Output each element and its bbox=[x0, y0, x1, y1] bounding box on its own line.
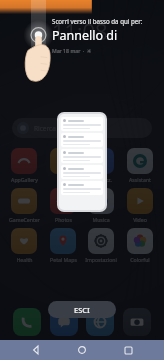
button[interactable]: Indietro bbox=[26, 340, 46, 360]
button[interactable]: GameCenter bbox=[6, 188, 42, 223]
staticText: 11:08 bbox=[52, 16, 108, 46]
button[interactable]: Photos bbox=[45, 188, 81, 223]
button[interactable]: Assistant bbox=[122, 148, 158, 183]
button[interactable]: Health bbox=[6, 228, 42, 263]
button[interactable]: Fotocamera bbox=[123, 308, 151, 336]
staticText: Mar 18 mar · ☀ bbox=[52, 47, 92, 54]
staticText: Colorful bbox=[130, 256, 150, 263]
button[interactable]: Recenti bbox=[118, 340, 138, 360]
button[interactable]: Home bbox=[72, 340, 92, 360]
staticText: Photos bbox=[55, 216, 72, 223]
staticText: Petal Maps bbox=[50, 256, 77, 263]
staticText: AppGallery bbox=[11, 176, 38, 183]
staticText: ESCI bbox=[74, 305, 90, 315]
button[interactable]: Temi bbox=[45, 148, 81, 183]
staticText: Assistant bbox=[129, 176, 151, 183]
button[interactable]: Messaggi bbox=[50, 308, 78, 336]
button[interactable]: Ottimizz. bbox=[83, 148, 119, 183]
staticText: Scorri verso il basso da qui per: bbox=[52, 17, 143, 25]
staticText: Video bbox=[133, 216, 147, 223]
button[interactable]: Colorful bbox=[122, 228, 158, 263]
button[interactable]: Video bbox=[122, 188, 158, 223]
staticText: Musica bbox=[92, 216, 110, 223]
button[interactable]: AppGallery bbox=[6, 148, 42, 183]
staticText: Pannello di notifica bbox=[52, 27, 160, 44]
button[interactable]: Ricerca Google bbox=[12, 118, 152, 138]
button[interactable]: Telefono bbox=[13, 308, 41, 336]
button[interactable]: Browser bbox=[86, 308, 114, 336]
button[interactable]: Musica bbox=[83, 188, 119, 223]
staticText: Health bbox=[16, 256, 33, 263]
staticText: Impostazioni bbox=[85, 256, 117, 263]
staticText: Ricerca bbox=[34, 124, 56, 133]
staticText: Temi bbox=[57, 176, 69, 183]
button[interactable]: Impostazioni bbox=[83, 228, 119, 263]
button[interactable]: ESCI bbox=[48, 301, 116, 318]
staticText: GameCenter bbox=[9, 216, 40, 223]
staticText: Ottimizz. bbox=[90, 176, 112, 183]
button[interactable]: Petal Maps bbox=[45, 228, 81, 263]
